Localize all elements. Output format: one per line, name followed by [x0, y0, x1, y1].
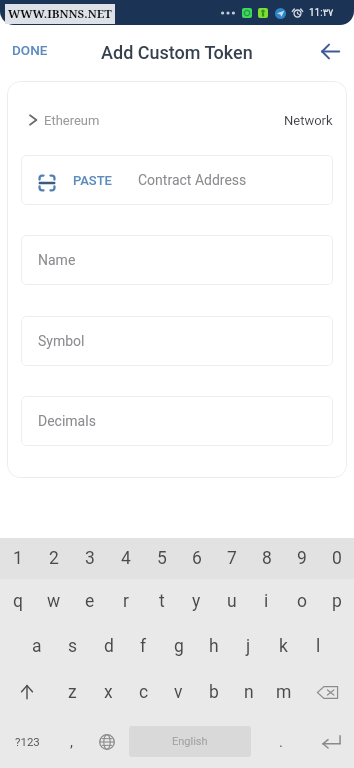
button[interactable]: 9 [284, 538, 319, 579]
staticText: DONE [12, 42, 48, 58]
button[interactable]: l [301, 624, 336, 669]
staticText: 8 [262, 548, 272, 569]
button[interactable]: s [55, 624, 91, 669]
button[interactable]: Symbol [21, 316, 333, 366]
button[interactable]: i [249, 579, 284, 624]
staticText: q [13, 591, 23, 612]
staticText: 6 [192, 548, 202, 569]
staticText: j [246, 636, 251, 657]
button[interactable]: 2 [36, 538, 72, 579]
staticText: Symbol [38, 333, 85, 349]
staticText: Add Custom Token [101, 42, 253, 63]
staticText: . [279, 733, 283, 751]
button[interactable]: y [179, 579, 214, 624]
button[interactable]: m [266, 669, 301, 715]
staticText: English [172, 735, 208, 748]
staticText: 4 [121, 548, 131, 569]
button[interactable]: 4 [108, 538, 144, 579]
staticText: x [104, 682, 113, 703]
staticText: k [279, 636, 288, 657]
button[interactable]: z [54, 669, 90, 715]
button[interactable]: d [91, 624, 126, 669]
staticText: b [209, 682, 219, 703]
button[interactable]: 8 [249, 538, 284, 579]
button[interactable]: e [72, 579, 108, 624]
staticText: o [297, 591, 307, 612]
button[interactable]: Ethereum [7, 101, 347, 139]
staticText: ?123 [15, 735, 40, 748]
staticText: n [244, 682, 254, 703]
button[interactable]: q [0, 579, 36, 624]
button[interactable]: v [161, 669, 196, 715]
button[interactable]: r [108, 579, 144, 624]
button[interactable]: English [129, 726, 251, 757]
staticText: 1 [13, 548, 23, 569]
button[interactable]: a [19, 624, 55, 669]
button[interactable]: 5 [144, 538, 179, 579]
button[interactable]: Change language [87, 715, 126, 768]
staticText: m [276, 682, 292, 703]
button[interactable]: DONE [4, 36, 56, 64]
button[interactable]: j [231, 624, 266, 669]
staticText: d [104, 636, 114, 657]
staticText: 3 [85, 548, 95, 569]
button[interactable]: Shift [0, 669, 54, 715]
button[interactable]: Back [312, 33, 348, 69]
staticText: h [209, 636, 219, 657]
staticText: 0 [332, 548, 342, 569]
staticText: t [159, 591, 165, 612]
button[interactable]: u [214, 579, 249, 624]
button[interactable]: Decimals [21, 396, 333, 446]
button[interactable]: o [284, 579, 319, 624]
staticText: , [70, 733, 73, 751]
button[interactable]: p [319, 579, 354, 624]
staticText: PASTE [73, 173, 112, 188]
button[interactable]: w [36, 579, 72, 624]
button[interactable]: 6 [179, 538, 214, 579]
staticText: Name [38, 252, 76, 268]
staticText: z [68, 682, 77, 703]
staticText: 11:٣٧ [309, 7, 334, 19]
staticText: 2 [49, 548, 59, 569]
button[interactable]: 3 [72, 538, 108, 579]
staticText: Decimals [38, 413, 96, 429]
staticText: Network [284, 113, 333, 128]
button[interactable]: Name [21, 235, 333, 285]
button[interactable]: 1 [0, 538, 36, 579]
staticText: c [139, 682, 149, 703]
staticText: 7 [227, 548, 237, 569]
button[interactable]: c [126, 669, 161, 715]
button[interactable]: t [144, 579, 179, 624]
staticText: l [316, 636, 321, 657]
button[interactable]: n [231, 669, 266, 715]
button[interactable]: h [196, 624, 231, 669]
staticText: y [192, 591, 201, 612]
staticText: Ethereum [44, 113, 100, 128]
staticText: WWW.IBNNS.NET [8, 6, 112, 22]
staticText: 5 [157, 548, 167, 569]
staticText: e [85, 591, 95, 612]
staticText: w [47, 591, 61, 612]
button[interactable]: ?123 [0, 715, 55, 768]
button[interactable]: PASTE [21, 155, 333, 205]
staticText: u [227, 591, 237, 612]
staticText: s [68, 636, 78, 657]
button[interactable]: g [161, 624, 196, 669]
button[interactable]: Backspace [301, 669, 354, 715]
button[interactable]: Enter [308, 715, 354, 768]
button[interactable]: , [55, 715, 87, 768]
staticText: g [174, 636, 184, 657]
button[interactable]: b [196, 669, 231, 715]
staticText: i [264, 591, 269, 612]
staticText: f [140, 636, 147, 657]
button[interactable]: f [126, 624, 161, 669]
staticText: v [174, 682, 183, 703]
button[interactable]: x [90, 669, 126, 715]
staticText: r [123, 591, 129, 612]
staticText: a [32, 636, 42, 657]
button[interactable]: 7 [214, 538, 249, 579]
button[interactable]: k [266, 624, 301, 669]
button[interactable]: 0 [319, 538, 354, 579]
staticText: Contract Address [138, 172, 247, 188]
